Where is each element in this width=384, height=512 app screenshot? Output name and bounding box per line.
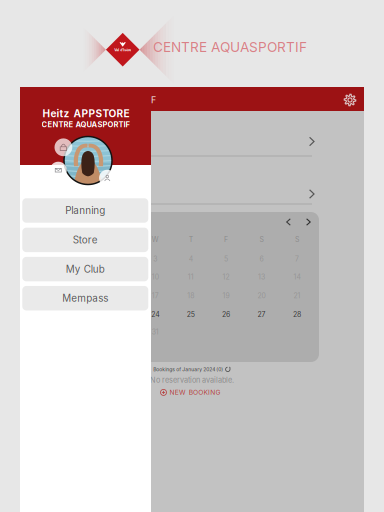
staticText: M (81, 235, 87, 244)
button[interactable]: Profile (99, 170, 115, 186)
staticText: W (152, 235, 159, 244)
button[interactable]: Planning (22, 198, 148, 223)
staticText: 20 (257, 292, 265, 300)
staticText: 2 (118, 255, 122, 263)
staticText: 24 (151, 310, 159, 319)
staticText: 19 (223, 292, 230, 300)
staticText: 18 (187, 292, 194, 300)
staticText: Planning (65, 204, 105, 216)
staticText: 13 (258, 273, 265, 281)
staticText: 23 (116, 310, 124, 319)
staticText: 12 (223, 273, 230, 281)
staticText: My bookings (0) (70, 136, 134, 146)
staticText: 17 (152, 292, 159, 300)
button[interactable]: Messages (50, 162, 67, 179)
staticText: 21 (293, 292, 300, 300)
staticText: Val d'Isère (114, 48, 131, 52)
staticText: CENTRE AQUASPORTIF (56, 95, 156, 105)
staticText: 7 (295, 255, 299, 263)
staticText: 15 (81, 292, 88, 300)
staticText: 4 (189, 255, 193, 263)
staticText: Store (73, 234, 98, 246)
staticText: 14 (293, 273, 300, 281)
button[interactable]: Settings (340, 90, 360, 110)
staticText: 31 (152, 328, 159, 336)
button[interactable]: Store (22, 228, 148, 252)
button[interactable]: Next month (301, 215, 315, 229)
button[interactable]: My bookings (0) (70, 128, 314, 154)
button[interactable]: Previous month (281, 215, 295, 229)
staticText: F (224, 235, 228, 244)
button[interactable]: Mempass (22, 286, 148, 310)
staticText: 11 (188, 273, 194, 281)
staticText: My subscriptions (70, 189, 137, 199)
staticText: S (295, 235, 299, 244)
staticText: 6 (259, 255, 263, 263)
button[interactable]: Privacy (54, 138, 72, 156)
staticText: T (189, 235, 193, 244)
button[interactable]: My subscriptions (70, 181, 314, 207)
staticText: 25 (187, 310, 195, 319)
staticText: Heitz APPSTORE (42, 107, 129, 120)
staticText: Mempass (62, 292, 108, 304)
staticText: 22 (80, 310, 88, 319)
staticText: 27 (257, 310, 265, 319)
staticText: 26 (222, 310, 230, 319)
staticText: My Club (66, 263, 105, 275)
staticText: 3 (153, 255, 157, 263)
staticText: CENTRE AQUASPORTIF (153, 39, 307, 55)
staticText: Bookings of January 2024 (0) (153, 367, 223, 373)
staticText: 28 (293, 310, 301, 319)
staticText: No reservation available. (150, 375, 234, 384)
staticText: 5 (224, 255, 228, 263)
button[interactable]: My Club (22, 257, 148, 281)
button[interactable]: NEW BOOKING (160, 387, 224, 397)
staticText: 10 (152, 273, 159, 281)
staticText: 1 (83, 255, 86, 263)
staticText: NEW BOOKING (169, 388, 220, 396)
staticText: S (259, 235, 263, 244)
staticText: CENTRE AQUASPORTIF (42, 120, 130, 129)
